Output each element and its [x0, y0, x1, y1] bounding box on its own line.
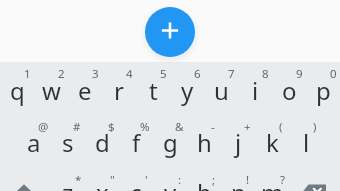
staticText: *: [75, 172, 82, 188]
staticText: @: [38, 119, 49, 135]
staticText: a: [27, 126, 41, 159]
staticText: ": [110, 172, 115, 188]
button[interactable]: [145, 7, 195, 57]
staticText: r: [114, 74, 124, 107]
staticText: u: [214, 74, 229, 107]
staticText: 7: [228, 66, 235, 82]
staticText: 3: [92, 66, 99, 82]
staticText: o: [282, 74, 297, 107]
staticText: !: [246, 172, 250, 188]
staticText: #: [73, 119, 81, 135]
staticText: l: [303, 126, 310, 159]
staticText: %: [140, 119, 150, 135]
staticText: ?: [280, 172, 285, 188]
staticText: v: [164, 176, 177, 191]
staticText: ;: [212, 172, 216, 188]
staticText: n: [231, 176, 246, 191]
staticText: z: [62, 176, 74, 191]
staticText: k: [266, 126, 279, 159]
staticText: (: [279, 119, 283, 135]
staticText: -: [211, 119, 215, 135]
staticText: 4: [126, 66, 133, 82]
staticText: j: [235, 126, 242, 159]
staticText: ': [145, 172, 148, 188]
staticText: e: [78, 74, 92, 107]
staticText: m: [261, 176, 284, 191]
staticText: q: [10, 74, 25, 107]
staticText: 0: [330, 66, 337, 82]
staticText: ): [313, 119, 317, 135]
staticText: 6: [194, 66, 201, 82]
staticText: 9: [296, 66, 303, 82]
staticText: i: [252, 74, 259, 107]
staticText: f: [132, 126, 141, 159]
staticText: h: [197, 126, 212, 159]
staticText: 8: [262, 66, 269, 82]
staticText: x: [96, 176, 109, 191]
staticText: 2: [58, 66, 65, 82]
staticText: :: [178, 172, 182, 188]
staticText: $: [108, 119, 115, 135]
staticText: g: [163, 126, 178, 159]
staticText: t: [149, 74, 158, 107]
staticText: d: [95, 126, 110, 159]
staticText: c: [130, 176, 142, 191]
staticText: +: [244, 119, 251, 135]
staticText: y: [181, 74, 194, 107]
staticText: p: [316, 74, 331, 107]
staticText: &: [175, 119, 184, 135]
staticText: 1: [24, 66, 31, 82]
staticText: b: [197, 176, 212, 191]
staticText: w: [42, 74, 61, 107]
staticText: 5: [160, 66, 167, 82]
staticText: s: [62, 126, 74, 159]
